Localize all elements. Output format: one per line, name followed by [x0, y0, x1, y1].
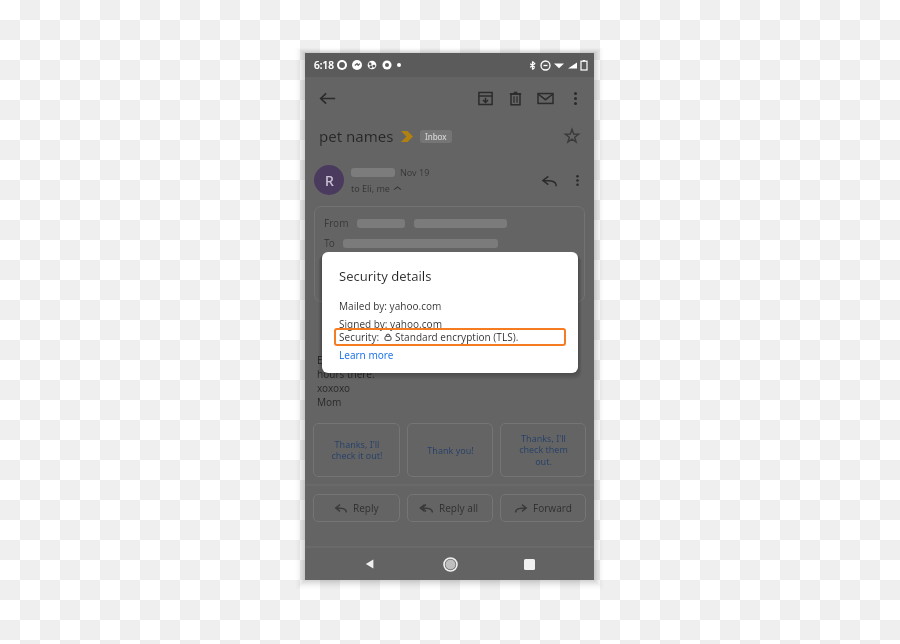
staticText: Reply all: [439, 501, 479, 515]
staticText: Standard encryption (TLS).: [395, 330, 519, 344]
staticText: From: [324, 216, 349, 230]
button[interactable]: Thanks, I'll check them out.: [500, 423, 586, 477]
button[interactable]: Archive: [470, 83, 500, 113]
button[interactable]: From: [314, 206, 585, 302]
button[interactable]: Reply: [534, 165, 564, 195]
button[interactable]: Learn more: [339, 348, 394, 362]
button[interactable]: Thanks, I'll check it out!: [313, 423, 400, 477]
staticText: Signed by: yahoo.com: [339, 317, 442, 331]
staticText: hours there.: [317, 367, 375, 381]
staticText: Thanks, I'll check it out!: [331, 438, 383, 462]
button[interactable]: Back: [311, 82, 343, 114]
button[interactable]: Thank you!: [407, 423, 493, 477]
staticText: R: [325, 171, 334, 190]
staticText: To: [324, 236, 335, 250]
staticText: Forward: [533, 501, 572, 515]
button[interactable]: Delete: [500, 83, 530, 113]
button[interactable]: Forward: [500, 494, 586, 522]
button[interactable]: Reply all: [407, 494, 493, 522]
staticText: Mom: [317, 395, 342, 409]
staticText: Security:: [339, 330, 380, 344]
staticText: Learn more: [339, 348, 394, 362]
button[interactable]: More options: [564, 167, 590, 193]
staticText: 6:18: [314, 58, 334, 72]
button[interactable]: R: [314, 165, 344, 195]
staticText: El: [317, 353, 326, 367]
button[interactable]: Reply: [313, 494, 400, 522]
button[interactable]: Mark unread: [530, 83, 560, 113]
staticText: Mailed by: yahoo.com: [339, 299, 442, 313]
staticText: Nov 19: [400, 166, 430, 178]
button[interactable]: Home: [435, 549, 465, 579]
staticText: to Eli, me: [351, 182, 390, 194]
staticText: Thank you!: [427, 444, 474, 456]
staticText: Reply: [353, 501, 379, 515]
staticText: Inbox: [425, 131, 447, 142]
staticText: Security details: [339, 267, 432, 285]
staticText: pet names: [319, 126, 394, 146]
button[interactable]: Star: [558, 122, 586, 150]
staticText: Thanks, I'll check them out.: [519, 432, 568, 468]
button[interactable]: More options: [560, 83, 590, 113]
staticText: xoxoxo: [317, 381, 351, 395]
button[interactable]: Recent apps: [514, 549, 544, 579]
button[interactable]: Back: [355, 549, 385, 579]
